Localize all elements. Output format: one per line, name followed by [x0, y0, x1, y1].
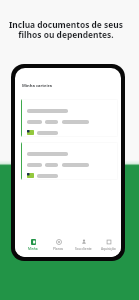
button[interactable]: Minha carteira: [20, 231, 46, 257]
other: Aquisição: [106, 239, 112, 245]
button[interactable]: Planos: [46, 231, 71, 257]
staticText: Aquisição: [101, 247, 116, 251]
button[interactable]: Sou cliente: [71, 231, 96, 257]
other: Sou cliente: [81, 239, 87, 245]
staticText: Minha carteira: [22, 83, 52, 89]
button[interactable]: [21, 99, 118, 137]
other: Planos: [56, 239, 62, 245]
staticText: Inclua documentos de seus filhos ou depe…: [5, 19, 127, 41]
staticText: Planos: [53, 247, 64, 251]
other: Minha carteira: [31, 239, 36, 245]
button[interactable]: Aquisição: [96, 231, 121, 257]
staticText: Sou cliente: [75, 247, 92, 251]
staticText: Minha: [28, 247, 38, 251]
button[interactable]: [21, 142, 118, 180]
